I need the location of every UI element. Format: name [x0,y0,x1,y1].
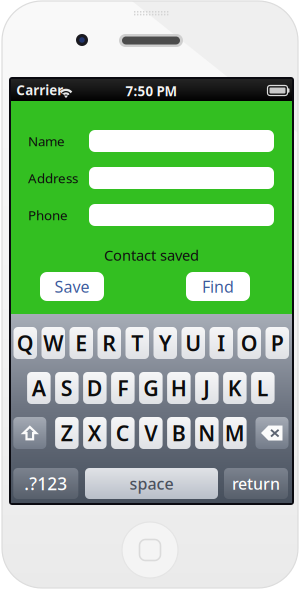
staticText: Save [54,276,89,297]
button[interactable]: V [139,417,163,449]
staticText: N [198,419,215,447]
staticText: return [232,473,280,494]
staticText: Name [28,132,65,150]
staticText: H [171,374,187,402]
staticText: D [87,374,103,402]
button[interactable]: T [125,327,149,359]
button[interactable]: U [181,327,205,359]
staticText: B [172,419,186,447]
button[interactable]: O [237,327,261,359]
button[interactable]: H [167,372,191,404]
button[interactable]: C [111,417,135,449]
staticText: G [143,374,158,402]
staticText: Q [17,329,34,357]
button[interactable]: E [69,327,93,359]
button[interactable]: M [223,417,247,449]
button[interactable]: R [97,327,121,359]
staticText: W [43,329,63,357]
staticText: U [185,329,201,357]
staticText: L [257,374,269,402]
button[interactable]: S [55,372,79,404]
button[interactable]: .?123 [13,468,78,499]
staticText: Address [28,169,78,187]
staticText: Contact saved [104,245,199,265]
staticText: A [32,374,46,402]
button[interactable]: K [223,372,247,404]
staticText: Z [61,419,73,447]
button[interactable]: X [83,417,107,449]
staticText: Phone [28,206,68,224]
staticText: Y [159,329,172,357]
staticText: S [61,374,73,402]
button[interactable]: return [224,468,288,499]
button[interactable]: F [111,372,135,404]
staticText: C [116,419,130,447]
button[interactable]: N [195,417,219,449]
button[interactable]: Find [186,272,250,301]
staticText: 7:50 PM [125,82,177,100]
button[interactable]: I [209,327,233,359]
button[interactable]: Z [55,417,79,449]
button[interactable]: B [167,417,191,449]
button[interactable]: space [85,468,218,499]
button[interactable]: P [265,327,289,359]
button[interactable]: J [195,372,219,404]
staticText: P [271,329,284,357]
button[interactable]: L [251,372,275,404]
staticText: O [241,329,258,357]
staticText: K [228,374,242,402]
staticText: V [144,419,157,447]
button[interactable]: A [27,372,51,404]
staticText: .?123 [24,472,67,495]
staticText: Find [202,276,234,297]
button[interactable]: Save [40,272,104,301]
button[interactable]: Delete [255,417,288,449]
staticText: T [131,329,143,357]
button[interactable]: G [139,372,163,404]
button[interactable]: D [83,372,107,404]
staticText: F [117,374,128,402]
staticText: Carrier [16,81,63,99]
button[interactable]: Shift [13,417,46,449]
staticText: space [129,473,173,494]
staticText: I [217,329,225,357]
button[interactable]: Y [153,327,177,359]
staticText: E [75,329,87,357]
staticText: J [203,374,210,402]
staticText: X [88,419,102,447]
button[interactable]: W [41,327,65,359]
button[interactable]: Q [13,327,37,359]
staticText: R [102,329,116,357]
staticText: M [225,419,245,447]
